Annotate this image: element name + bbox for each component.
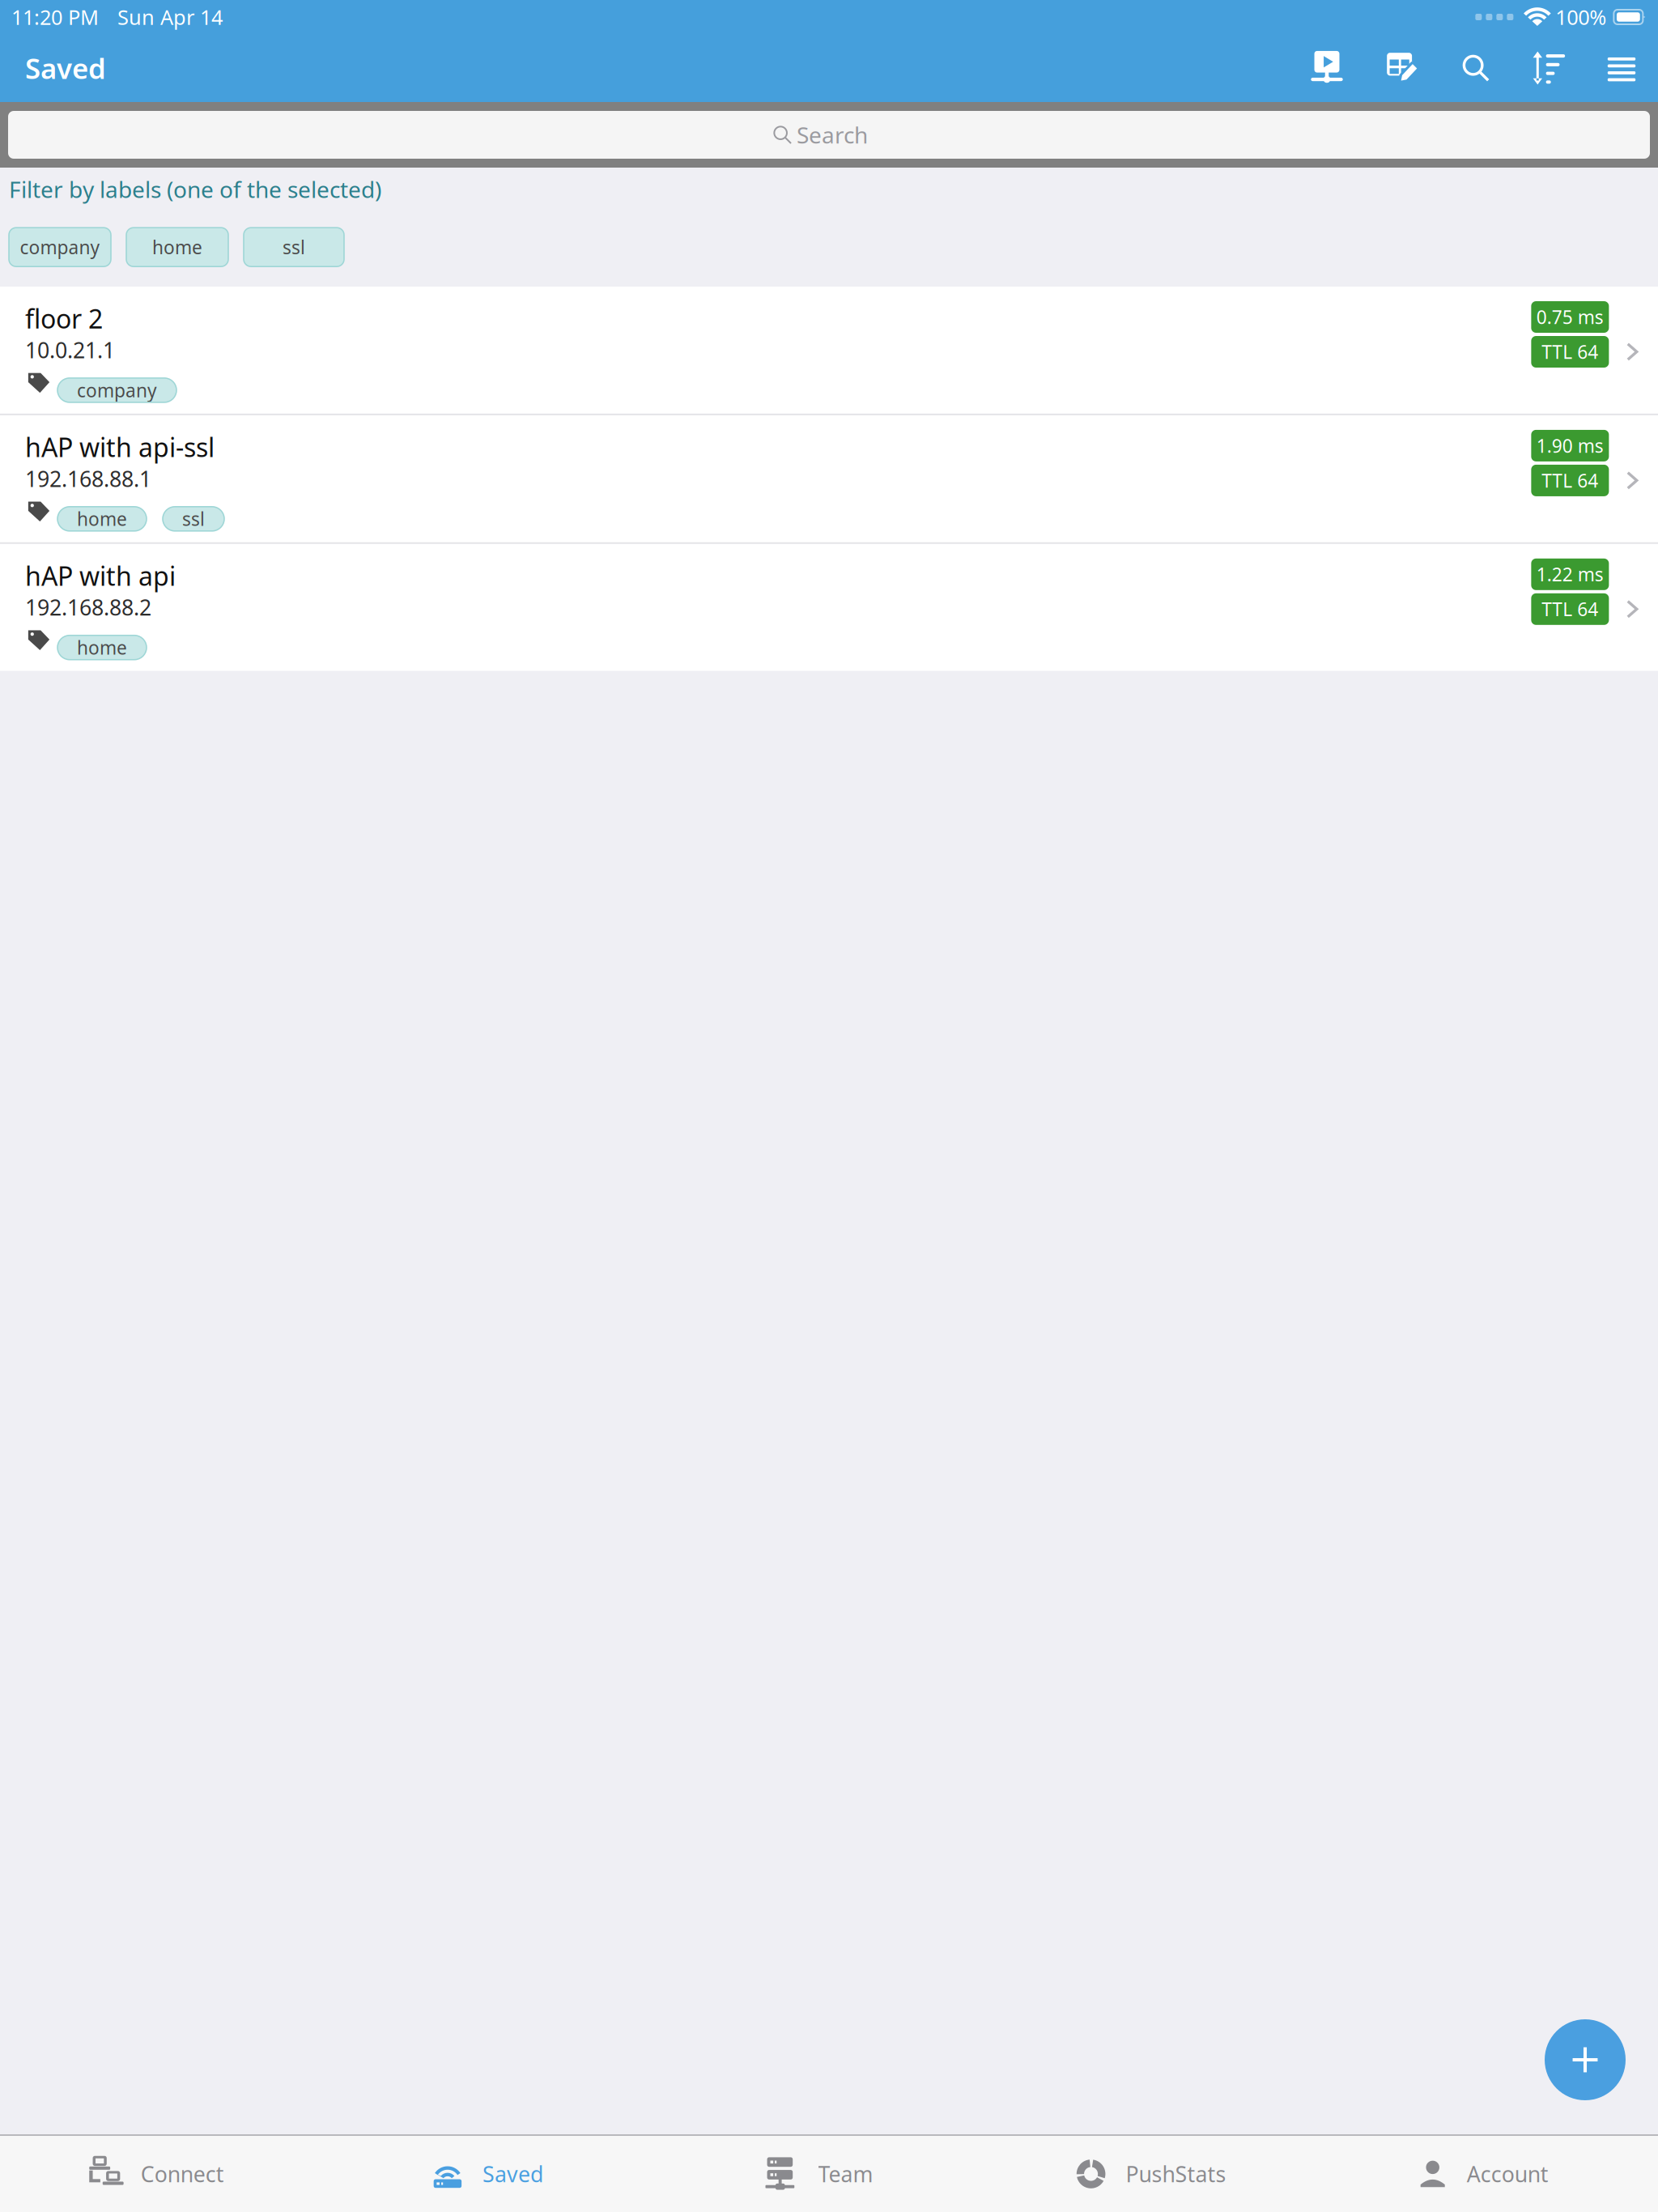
button[interactable]: Edit xyxy=(1365,34,1439,102)
staticText: TTL 64 xyxy=(1542,597,1598,621)
staticText: 11:20 PM xyxy=(11,3,99,31)
staticText: Team xyxy=(818,2160,873,2188)
staticText: Connect xyxy=(141,2160,224,2188)
staticText: home xyxy=(152,235,202,259)
staticText: floor 2 xyxy=(25,301,103,336)
staticText: 1.90 ms xyxy=(1536,433,1604,458)
staticText: Saved xyxy=(482,2160,543,2188)
button[interactable]: PushStats xyxy=(995,2136,1326,2212)
staticText: Saved xyxy=(25,49,106,87)
staticText: 100% xyxy=(1556,3,1607,31)
staticText: company xyxy=(20,235,100,259)
staticText: hAP with api xyxy=(25,559,176,593)
button[interactable]: Team xyxy=(663,2136,995,2212)
button[interactable]: Screen share xyxy=(1289,34,1365,102)
button[interactable]: Menu xyxy=(1585,34,1658,102)
staticText: 192.168.88.2 xyxy=(25,593,151,622)
staticText: 192.168.88.1 xyxy=(25,464,151,493)
staticText: TTL 64 xyxy=(1542,468,1598,493)
staticText: Filter by labels (one of the selected) xyxy=(9,174,381,204)
staticText: company xyxy=(77,378,157,402)
staticText: 1.22 ms xyxy=(1536,562,1604,587)
button[interactable]: hAP with api xyxy=(0,544,1658,671)
staticText: hAP with api-ssl xyxy=(25,430,215,464)
staticText: ssl xyxy=(283,235,305,259)
button[interactable]: Search xyxy=(1439,34,1512,102)
button[interactable]: ssl xyxy=(244,228,344,267)
staticText: Search xyxy=(797,120,868,150)
button[interactable]: Account xyxy=(1326,2136,1658,2212)
staticText: Sun Apr 14 xyxy=(117,3,223,31)
button[interactable]: Sort xyxy=(1512,34,1585,102)
button[interactable]: Search xyxy=(0,102,1658,168)
staticText: 10.0.21.1 xyxy=(25,336,115,364)
button[interactable]: company xyxy=(9,228,111,267)
button[interactable]: Saved xyxy=(332,2136,663,2212)
staticText: PushStats xyxy=(1126,2160,1226,2188)
button[interactable]: home xyxy=(126,228,228,267)
staticText: 0.75 ms xyxy=(1536,305,1604,329)
button[interactable]: hAP with api-ssl xyxy=(0,415,1658,542)
staticText: home xyxy=(77,507,127,531)
staticText: TTL 64 xyxy=(1542,340,1598,364)
button[interactable]: floor 2 xyxy=(0,287,1658,414)
button[interactable]: Add xyxy=(1545,2019,1658,2134)
staticText: ssl xyxy=(182,507,205,531)
staticText: home xyxy=(77,635,127,660)
staticText: Account xyxy=(1467,2160,1548,2188)
button[interactable]: Connect xyxy=(0,2136,332,2212)
